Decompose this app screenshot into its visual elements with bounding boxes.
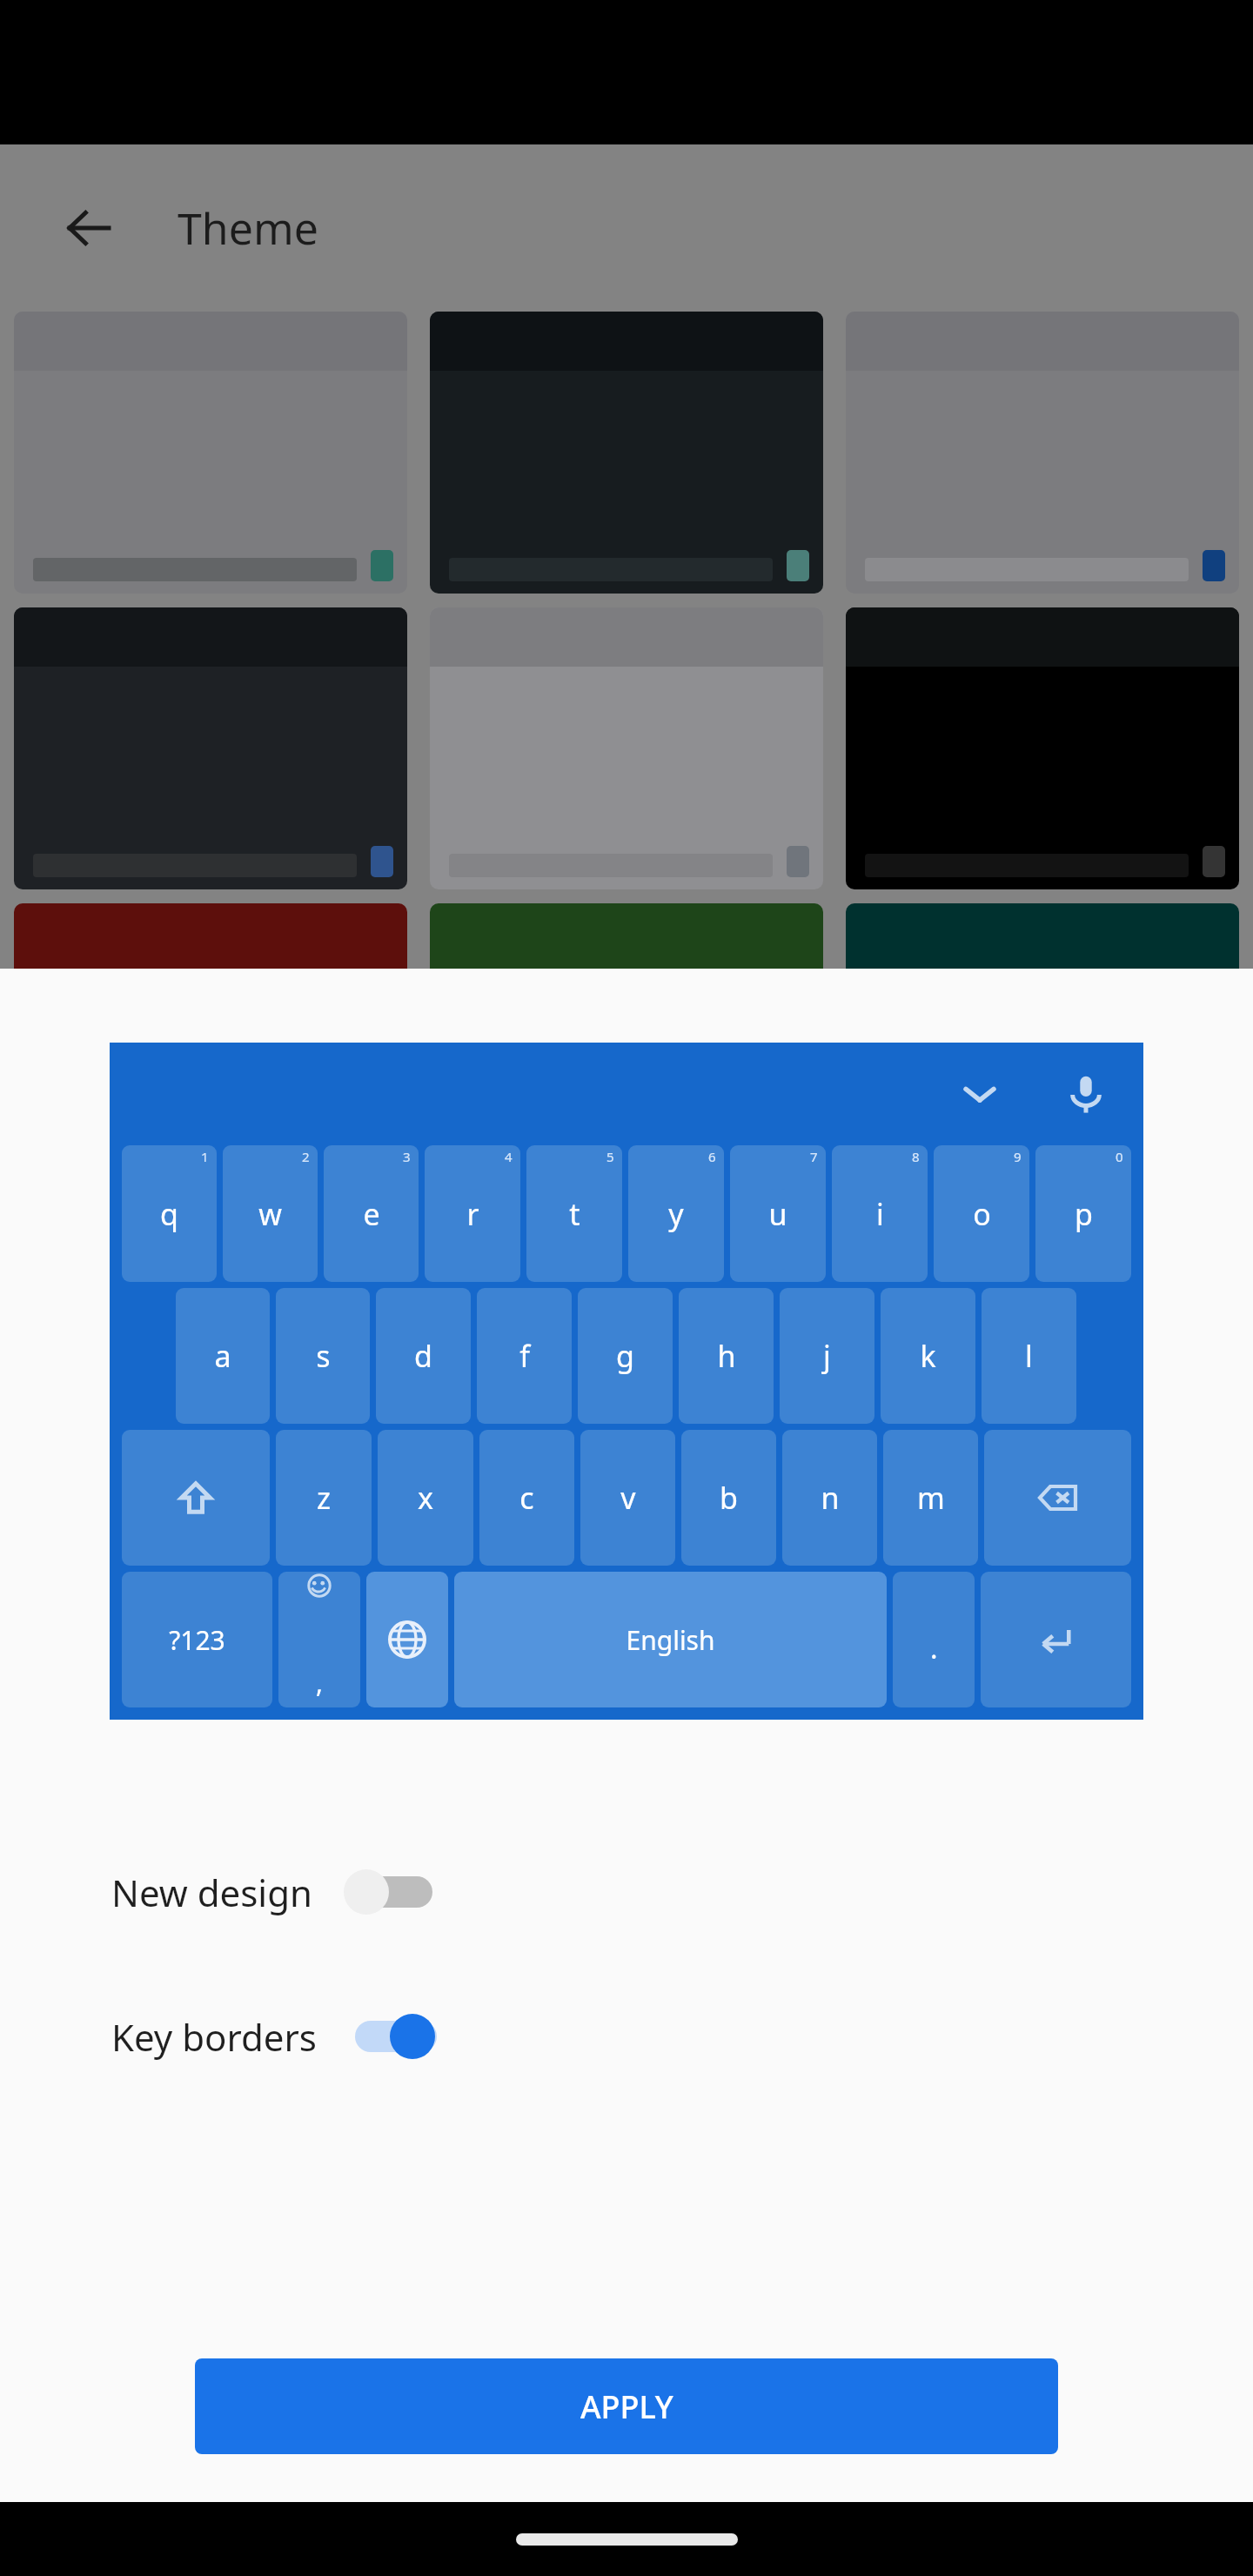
- staticText: p: [1075, 1194, 1093, 1234]
- staticText: w: [258, 1194, 282, 1234]
- button[interactable]: h: [679, 1288, 774, 1424]
- button[interactable]: Emoji: [278, 1572, 360, 1707]
- button[interactable]: w: [223, 1145, 318, 1282]
- button[interactable]: ?123: [122, 1572, 272, 1707]
- button[interactable]: Switch language: [366, 1572, 448, 1707]
- button[interactable]: [846, 903, 1239, 1185]
- other: Enter: [1038, 1621, 1075, 1658]
- button[interactable]: g: [578, 1288, 673, 1424]
- staticText: Theme: [178, 198, 318, 258]
- staticText: English: [626, 1622, 715, 1658]
- staticText: c: [519, 1478, 534, 1518]
- button[interactable]: o: [934, 1145, 1029, 1282]
- button[interactable]: r: [425, 1145, 520, 1282]
- staticText: 3: [403, 1148, 411, 1165]
- staticText: 5: [606, 1148, 614, 1165]
- staticText: 0: [1116, 1148, 1123, 1165]
- staticText: Key borders: [111, 2012, 317, 2062]
- button[interactable]: k: [881, 1288, 975, 1424]
- staticText: APPLY: [580, 2385, 673, 2428]
- button[interactable]: l: [982, 1288, 1076, 1424]
- button[interactable]: [14, 312, 407, 594]
- button[interactable]: Hide keyboard: [940, 1054, 1020, 1134]
- button[interactable]: [430, 312, 823, 594]
- staticText: ?123: [169, 1622, 225, 1658]
- button[interactable]: [430, 903, 823, 1185]
- staticText: 7: [810, 1148, 818, 1165]
- button[interactable]: Voice input: [1046, 1054, 1126, 1134]
- button[interactable]: j: [780, 1288, 874, 1424]
- button[interactable]: z: [276, 1430, 372, 1566]
- staticText: n: [821, 1478, 840, 1518]
- button[interactable]: s: [276, 1288, 370, 1424]
- button[interactable]: t: [526, 1145, 622, 1282]
- button[interactable]: APPLY: [195, 2358, 1058, 2454]
- button[interactable]: Shift: [122, 1430, 270, 1566]
- staticText: j: [823, 1336, 831, 1376]
- button[interactable]: p: [1035, 1145, 1131, 1282]
- button[interactable]: English: [454, 1572, 887, 1707]
- staticText: d: [414, 1336, 432, 1376]
- staticText: l: [1025, 1336, 1033, 1376]
- staticText: k: [920, 1336, 936, 1376]
- button[interactable]: v: [580, 1430, 675, 1566]
- staticText: y: [668, 1194, 684, 1234]
- staticText: e: [363, 1194, 380, 1234]
- button[interactable]: [430, 607, 823, 889]
- staticText: g: [616, 1336, 634, 1376]
- other: Backspace: [1036, 1476, 1080, 1519]
- button[interactable]: Key borders: [111, 2002, 1253, 2071]
- button[interactable]: Back: [52, 191, 125, 265]
- staticText: ,: [316, 1665, 324, 1701]
- staticText: q: [160, 1194, 178, 1234]
- staticText: 9: [1014, 1148, 1022, 1165]
- staticText: f: [519, 1336, 530, 1376]
- button[interactable]: Enter: [981, 1572, 1131, 1707]
- staticText: x: [418, 1478, 433, 1518]
- staticText: r: [466, 1194, 479, 1234]
- button[interactable]: Backspace: [984, 1430, 1131, 1566]
- staticText: a: [214, 1336, 231, 1376]
- button[interactable]: m: [883, 1430, 978, 1566]
- button[interactable]: b: [681, 1430, 776, 1566]
- button[interactable]: x: [378, 1430, 473, 1566]
- button[interactable]: q: [122, 1145, 217, 1282]
- button[interactable]: u: [730, 1145, 826, 1282]
- button[interactable]: [14, 607, 407, 889]
- staticText: u: [768, 1194, 787, 1234]
- button[interactable]: f: [477, 1288, 572, 1424]
- other: Switch language: [388, 1620, 426, 1659]
- button[interactable]: New design: [111, 1857, 1253, 1927]
- button[interactable]: a: [176, 1288, 270, 1424]
- staticText: New design: [111, 1868, 312, 1917]
- other: Emoji: [278, 1572, 360, 1707]
- button[interactable]: y: [628, 1145, 724, 1282]
- staticText: z: [317, 1478, 331, 1518]
- staticText: o: [973, 1194, 991, 1234]
- staticText: m: [917, 1478, 945, 1518]
- staticText: 6: [708, 1148, 716, 1165]
- button[interactable]: [14, 903, 407, 1185]
- staticText: .: [930, 1629, 938, 1667]
- staticText: 2: [302, 1148, 310, 1165]
- staticText: s: [316, 1336, 331, 1376]
- button[interactable]: i: [832, 1145, 928, 1282]
- button[interactable]: e: [324, 1145, 419, 1282]
- staticText: b: [720, 1478, 738, 1518]
- button[interactable]: d: [376, 1288, 471, 1424]
- staticText: h: [717, 1336, 736, 1376]
- button[interactable]: [846, 607, 1239, 889]
- staticText: v: [620, 1478, 636, 1518]
- button[interactable]: n: [782, 1430, 877, 1566]
- staticText: i: [876, 1194, 884, 1234]
- button[interactable]: .: [893, 1572, 975, 1707]
- staticText: 8: [912, 1148, 920, 1165]
- staticText: 4: [505, 1148, 513, 1165]
- other: Shift: [177, 1479, 215, 1517]
- staticText: t: [569, 1194, 580, 1234]
- button[interactable]: c: [479, 1430, 574, 1566]
- staticText: 1: [201, 1148, 209, 1165]
- button[interactable]: [846, 312, 1239, 594]
